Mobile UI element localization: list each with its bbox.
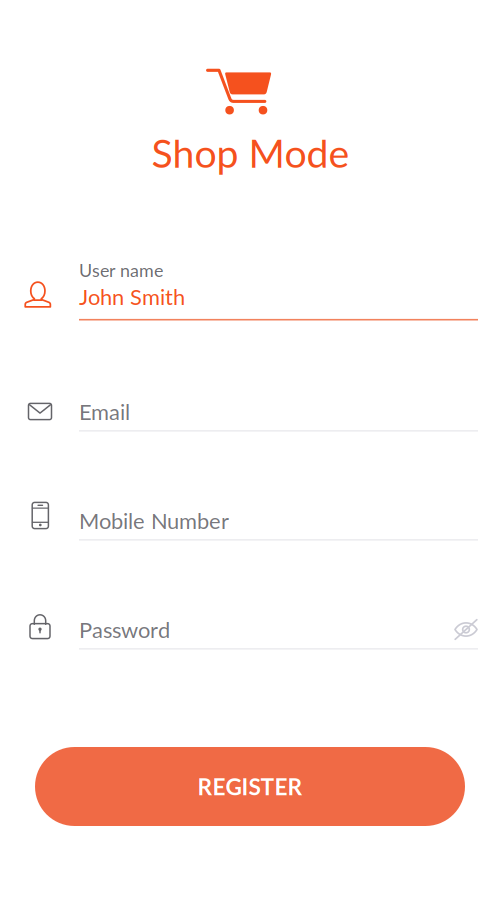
staticText: John Smith xyxy=(79,283,185,310)
button[interactable]: Mobile Number xyxy=(0,494,500,540)
button[interactable]: User name xyxy=(0,263,500,325)
staticText: REGISTER xyxy=(197,773,302,800)
staticText: Shop Mode xyxy=(151,129,349,176)
button[interactable]: Email xyxy=(0,388,500,434)
staticText: Email xyxy=(79,398,130,425)
button[interactable]: Password xyxy=(0,603,500,649)
staticText: Password xyxy=(79,616,170,643)
staticText: Mobile Number xyxy=(79,507,229,534)
staticText: User name xyxy=(79,259,163,281)
button[interactable]: REGISTER xyxy=(35,747,465,826)
